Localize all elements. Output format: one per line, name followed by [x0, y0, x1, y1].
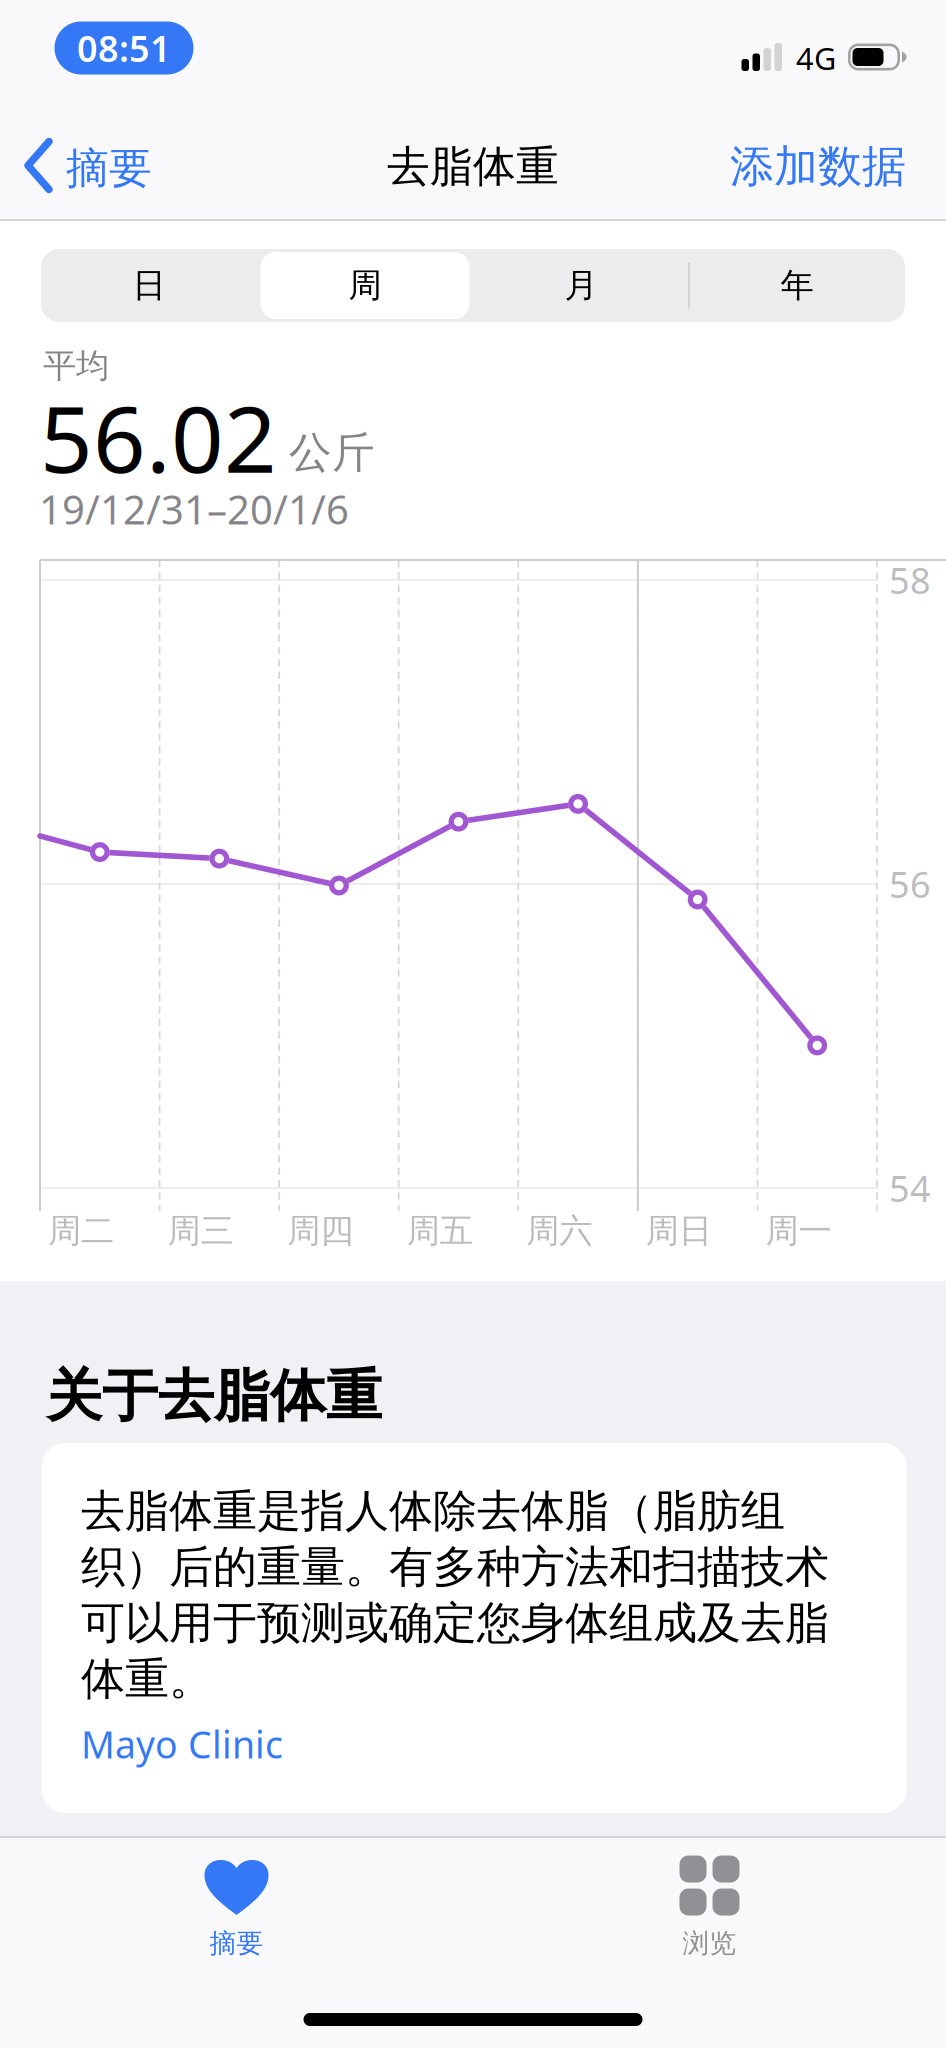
- button[interactable]: 浏览: [473, 1837, 946, 1960]
- staticText: 关于去脂体重: [46, 1362, 382, 1430]
- button[interactable]: Mayo Clinic: [0, 0, 946, 2048]
- button[interactable]: 摘要: [0, 1837, 473, 1960]
- staticText: 56.02: [40, 376, 277, 498]
- staticText: 公斤: [289, 427, 375, 479]
- button[interactable]: 年: [689, 249, 905, 322]
- staticText: 周一: [765, 1210, 831, 1251]
- staticText: 日: [132, 265, 165, 306]
- staticText: 浏览: [682, 1927, 736, 1960]
- staticText: 4G: [796, 38, 836, 78]
- button[interactable]: 月: [473, 249, 689, 322]
- staticText: 58: [889, 556, 931, 604]
- staticText: 周二: [48, 1210, 114, 1251]
- staticText: Mayo Clinic: [81, 1719, 283, 1769]
- staticText: 平均: [43, 345, 109, 386]
- staticText: 周四: [287, 1210, 353, 1251]
- button[interactable]: 摘要: [0, 118, 152, 206]
- staticText: 54: [889, 1164, 931, 1212]
- staticText: 周: [348, 265, 381, 306]
- staticText: 去脂体重是指人体除去体脂（脂肪组织）后的重量。有多种方法和扫描技术可以用于预测或…: [81, 1484, 829, 1706]
- staticText: 19/12/31–20/1/6: [39, 482, 349, 535]
- staticText: 08:51: [77, 24, 171, 72]
- staticText: 摘要: [66, 142, 152, 195]
- staticText: 周五: [407, 1210, 473, 1251]
- staticText: 周日: [646, 1210, 712, 1251]
- staticText: 年: [780, 265, 813, 306]
- staticText: 去脂体重: [387, 140, 559, 193]
- staticText: 摘要: [209, 1927, 263, 1960]
- button[interactable]: 周: [257, 249, 473, 322]
- staticText: 添加数据: [730, 139, 906, 193]
- button[interactable]: 添加数据: [730, 119, 946, 205]
- button[interactable]: 日: [41, 249, 257, 322]
- staticText: 周六: [526, 1210, 592, 1251]
- staticText: 周三: [168, 1210, 234, 1251]
- staticText: 月: [564, 265, 597, 306]
- staticText: 56: [889, 860, 931, 908]
